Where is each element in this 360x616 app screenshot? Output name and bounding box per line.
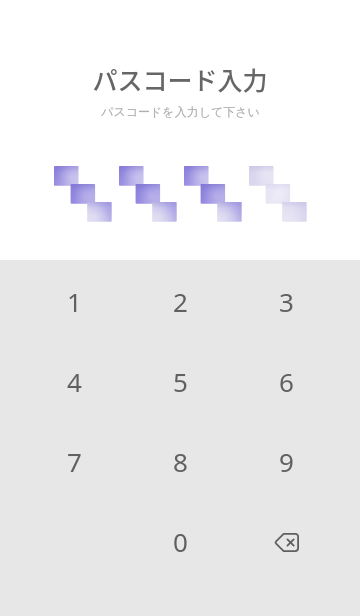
button[interactable]: 6: [233, 341, 339, 421]
button[interactable]: 3: [233, 261, 339, 341]
button[interactable]: 9: [233, 421, 339, 501]
staticText: パスコードを入力して下さい: [101, 104, 260, 119]
staticText: 9: [279, 444, 294, 479]
button[interactable]: 1: [21, 261, 127, 341]
staticText: 7: [67, 444, 82, 479]
button[interactable]: 7: [21, 421, 127, 501]
staticText: 3: [279, 284, 294, 319]
staticText: 5: [173, 364, 188, 399]
staticText: 8: [173, 444, 188, 479]
other: Delete: [274, 533, 299, 552]
button[interactable]: 8: [127, 421, 233, 501]
button[interactable]: Delete: [233, 501, 339, 581]
button[interactable]: 5: [127, 341, 233, 421]
button[interactable]: 4: [21, 341, 127, 421]
staticText: 6: [279, 364, 294, 399]
button[interactable]: 2: [127, 261, 233, 341]
staticText: 2: [173, 284, 188, 319]
staticText: 4: [67, 364, 82, 399]
staticText: 1: [67, 284, 82, 319]
button[interactable]: 0: [127, 501, 233, 581]
staticText: パスコード入力: [92, 61, 268, 97]
staticText: 0: [173, 524, 188, 559]
